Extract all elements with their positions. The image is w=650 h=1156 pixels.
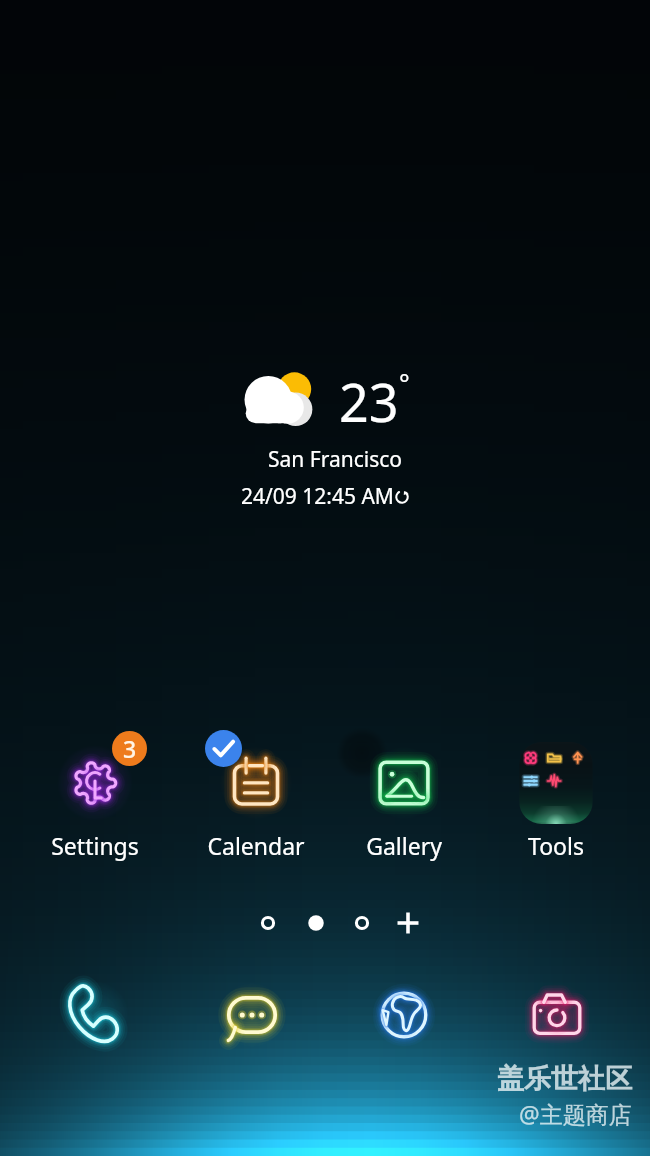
button[interactable]: Messages bbox=[208, 971, 296, 1059]
button[interactable]: 3 bbox=[30, 740, 160, 861]
button[interactable]: Go to page bbox=[251, 906, 285, 940]
button[interactable]: Add page bbox=[391, 906, 425, 940]
staticText: Calendar bbox=[207, 830, 305, 861]
button[interactable]: Calendar bbox=[191, 740, 321, 861]
button[interactable]: Camera bbox=[513, 971, 601, 1059]
button[interactable]: Tools bbox=[491, 740, 621, 861]
staticText: Gallery bbox=[366, 830, 442, 861]
staticText: ° bbox=[399, 366, 410, 400]
staticText: 24/09 12:45 AM bbox=[241, 482, 394, 511]
staticText: San Francisco bbox=[268, 445, 403, 474]
button[interactable]: Go to page bbox=[345, 906, 379, 940]
staticText: Settings bbox=[51, 830, 139, 861]
staticText: 3 bbox=[123, 733, 137, 764]
staticText: Tools bbox=[528, 830, 584, 861]
button[interactable]: Current page bbox=[299, 906, 333, 940]
staticText: 23 bbox=[339, 366, 399, 437]
staticText: @主题商店 bbox=[519, 1098, 632, 1129]
button[interactable]: Gallery bbox=[339, 740, 469, 861]
button[interactable]: Phone bbox=[51, 971, 139, 1059]
staticText: 盖乐世社区 bbox=[497, 1062, 632, 1096]
button[interactable]: Browser bbox=[360, 971, 448, 1059]
button[interactable]: 23 bbox=[0, 366, 650, 511]
